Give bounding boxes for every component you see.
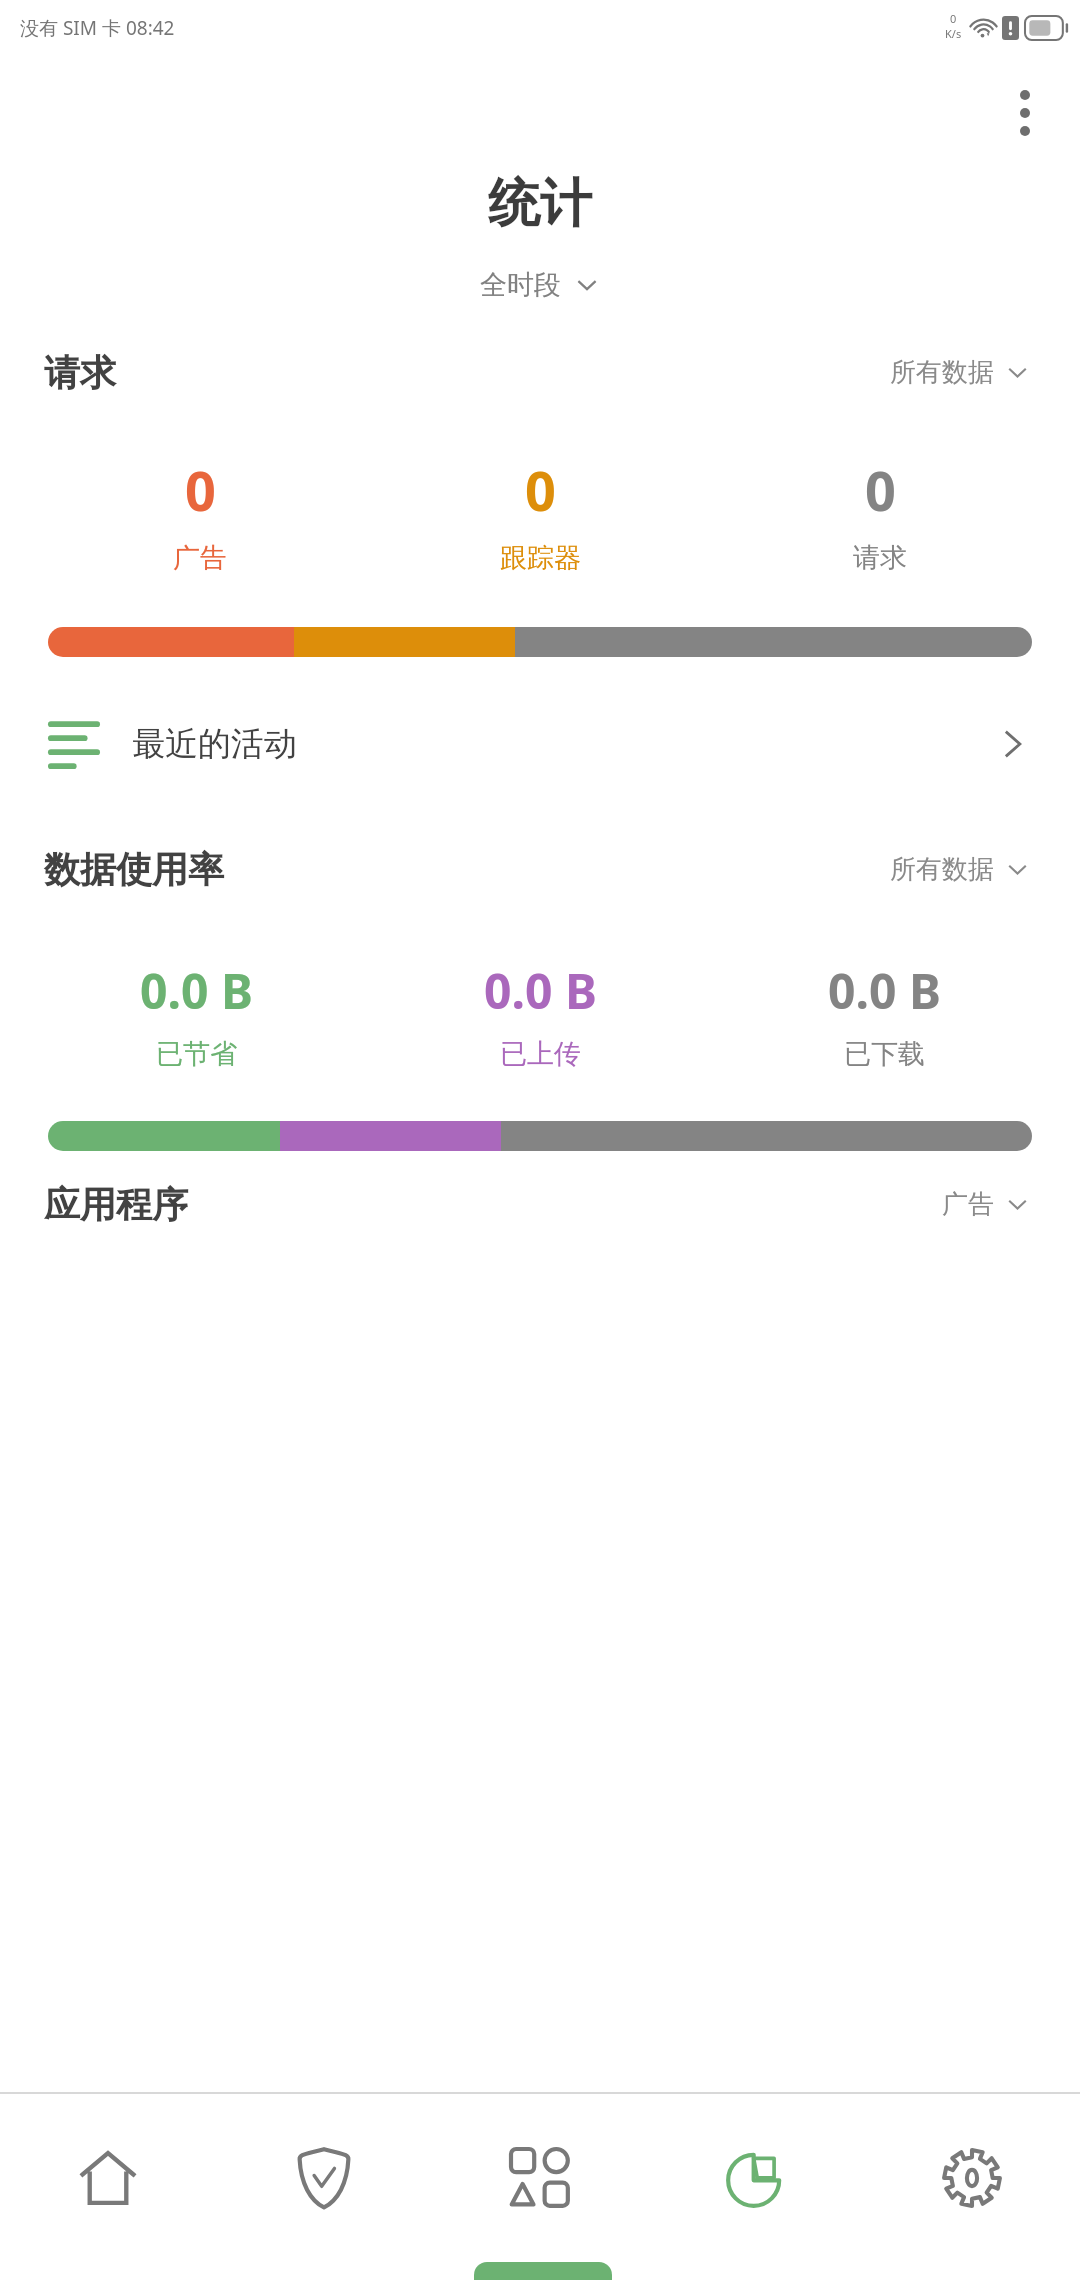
button[interactable]: 所有数据	[884, 847, 1036, 892]
staticText: 最近的活动	[132, 723, 297, 765]
button[interactable]: 0.0 B	[712, 956, 1056, 1073]
button[interactable]: 广告	[936, 1182, 1036, 1227]
staticText: 0	[185, 453, 216, 527]
staticText: 所有数据	[890, 356, 994, 389]
staticText: 0	[525, 453, 556, 527]
button[interactable]: Apps	[432, 2094, 648, 2262]
staticText: 广告	[173, 541, 227, 575]
staticText: 应用程序	[44, 1182, 188, 1227]
staticText: 已下载	[844, 1037, 925, 1071]
staticText: 0.0 B	[484, 958, 597, 1023]
button[interactable]: 0	[370, 451, 710, 577]
button[interactable]: 最近的活动	[0, 690, 1080, 798]
button[interactable]: Settings	[864, 2094, 1080, 2262]
staticText: 所有数据	[890, 853, 994, 886]
button[interactable]: 0.0 B	[368, 956, 712, 1073]
staticText: 0	[865, 453, 896, 527]
staticText: 已节省	[156, 1037, 237, 1071]
staticText: 没有 SIM 卡 08:42	[20, 15, 175, 41]
staticText: 跟踪器	[500, 541, 581, 575]
staticText: 0.0 B	[828, 958, 941, 1023]
button[interactable]: 0	[30, 451, 370, 577]
staticText: 0	[950, 11, 957, 26]
staticText: 已上传	[500, 1037, 581, 1071]
staticText: 0.0 B	[140, 958, 253, 1023]
staticText: K/s	[945, 26, 962, 41]
staticText: 统计	[488, 171, 592, 237]
button[interactable]: More options	[989, 77, 1061, 149]
button[interactable]: 全时段	[468, 262, 612, 308]
button[interactable]: Statistics	[648, 2094, 864, 2262]
button[interactable]: 所有数据	[884, 350, 1036, 395]
staticText: 广告	[942, 1188, 994, 1221]
staticText: 数据使用率	[44, 847, 224, 892]
staticText: 请求	[853, 541, 907, 575]
button[interactable]: Home	[0, 2094, 216, 2262]
button[interactable]: 0	[710, 451, 1050, 577]
staticText: 请求	[44, 350, 116, 395]
button[interactable]: 0.0 B	[24, 956, 368, 1073]
button[interactable]: Protection	[216, 2094, 432, 2262]
staticText: 全时段	[480, 268, 561, 302]
